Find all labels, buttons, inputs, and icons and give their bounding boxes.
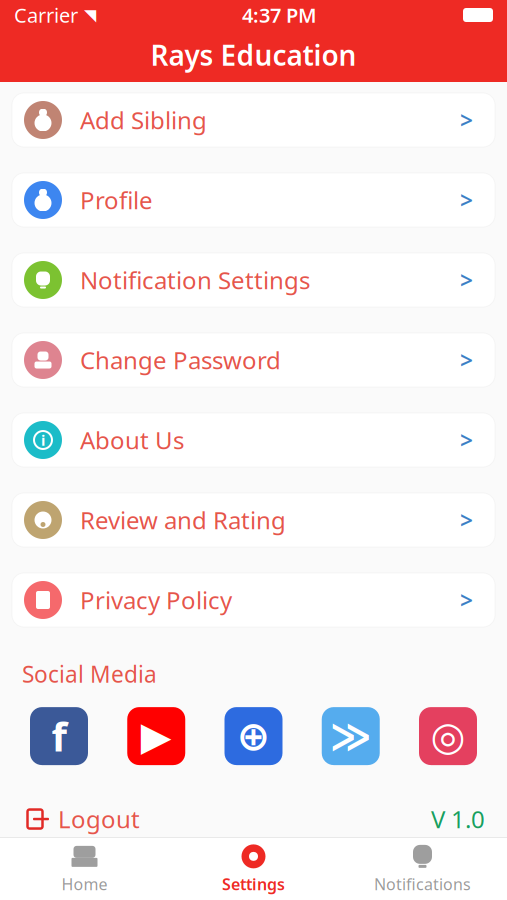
staticText: Notification Settings [80,264,310,296]
staticText: f [51,709,66,763]
staticText: V 1.0 [431,803,485,835]
staticText: ▶ [141,713,172,759]
staticText: > [460,585,473,615]
button[interactable]: Notification Settings [12,253,495,307]
button[interactable]: Instagram [419,707,477,765]
button[interactable]: Change Password [12,333,495,387]
staticText: > [460,345,473,375]
staticText: Add Sibling [80,104,207,136]
button[interactable]: i [12,413,495,467]
staticText: ⊕ [236,713,270,759]
staticText: > [460,505,473,535]
staticText: About Us [80,424,184,456]
button[interactable]: Twitter [322,707,380,765]
staticText: > [460,265,473,295]
button[interactable]: YouTube [127,707,185,765]
staticText: > [460,425,473,455]
staticText: > [460,185,473,215]
staticText: 4:37 PM [242,2,317,28]
staticText: Profile [80,184,153,216]
button[interactable]: Logout [22,803,140,835]
staticText: ◥ [84,6,96,24]
button[interactable]: Website [224,707,282,765]
button[interactable]: Add Sibling [12,93,495,147]
button[interactable]: Privacy Policy [12,573,495,627]
staticText: Review and Rating [80,504,286,536]
staticText: Home [61,873,107,895]
staticText: ◎ [430,713,465,759]
button[interactable]: Profile [12,173,495,227]
button[interactable]: Home [0,838,169,900]
button[interactable]: Facebook [30,707,88,765]
staticText: Settings [222,873,285,895]
staticText: > [460,105,473,135]
button[interactable]: Review and Rating [12,493,495,547]
staticText: Change Password [80,344,281,376]
staticText: Carrier [14,2,78,28]
button[interactable]: Settings [169,838,338,900]
staticText: Privacy Policy [80,584,232,616]
staticText: Social Media [22,659,157,689]
staticText: i [41,430,45,450]
button[interactable]: Notifications [338,838,507,900]
staticText: ≫ [330,713,372,759]
staticText: Rays Education [150,36,356,74]
staticText: Logout [58,803,140,835]
staticText: Notifications [374,873,471,895]
